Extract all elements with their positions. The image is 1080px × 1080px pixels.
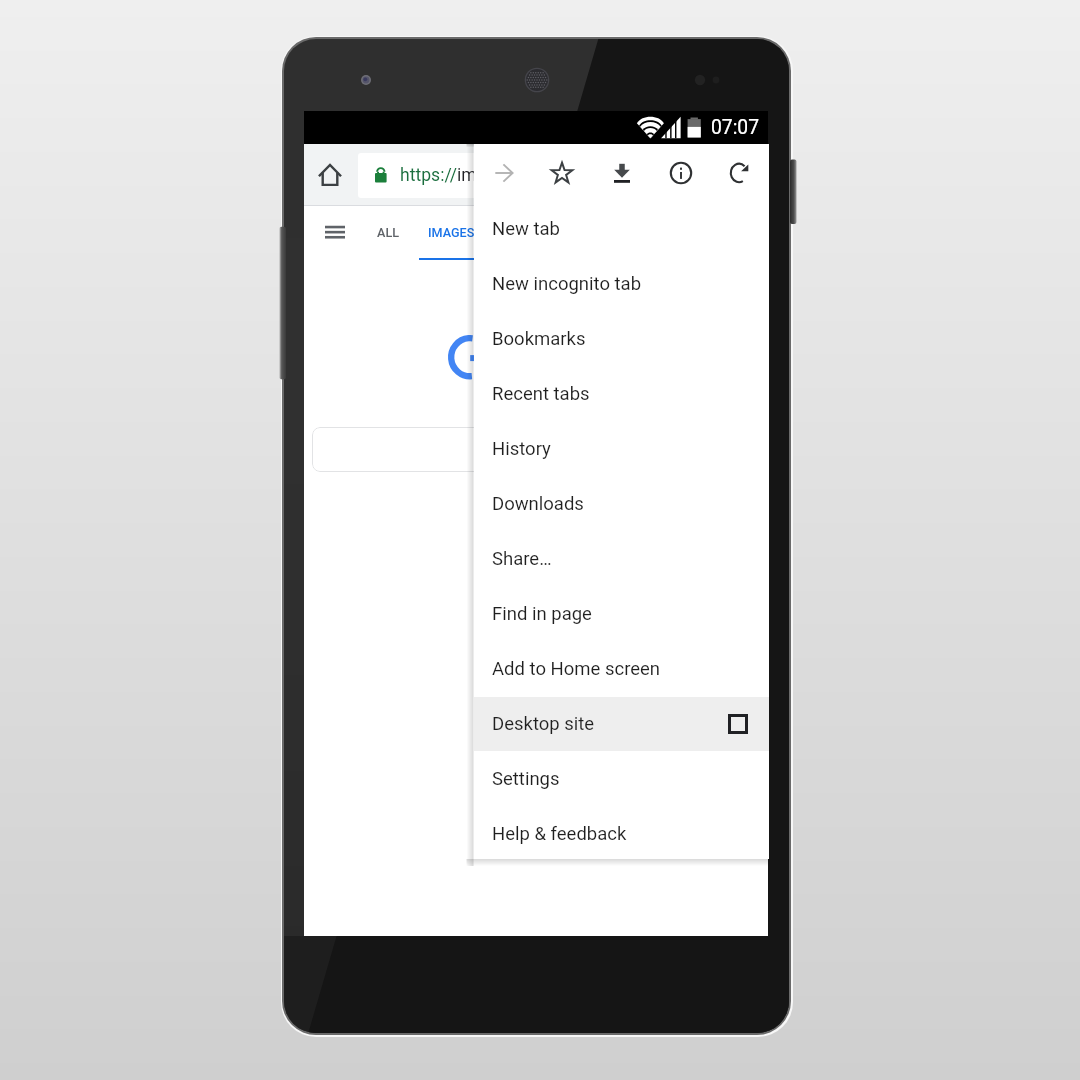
button[interactable]: New tab — [474, 202, 769, 256]
button[interactable]: Add to Home screen — [474, 642, 769, 696]
staticText: ALL — [377, 225, 400, 240]
staticText: Settings — [492, 768, 560, 790]
staticText: Desktop site — [492, 713, 595, 735]
button[interactable]: Downloads — [474, 477, 769, 531]
button[interactable]: Help & feedback — [474, 807, 769, 861]
staticText: New tab — [492, 218, 561, 240]
button[interactable]: Desktop site — [474, 697, 769, 751]
button[interactable]: History — [474, 422, 769, 476]
button[interactable]: Recent tabs — [474, 367, 769, 421]
button[interactable]: Find in page — [474, 587, 769, 641]
button[interactable]: Bookmarks — [474, 312, 769, 366]
staticText: New incognito tab — [492, 273, 642, 295]
button[interactable]: Bookmark — [541, 152, 583, 194]
button[interactable]: Site menu — [317, 214, 353, 250]
button[interactable]: IMAGES — [428, 214, 475, 250]
staticText: History — [492, 438, 551, 460]
button[interactable]: Forward — [483, 152, 525, 194]
staticText: Add to Home screen — [492, 658, 661, 680]
button[interactable]: Share… — [474, 532, 769, 586]
staticText: 07:07 — [711, 116, 760, 139]
button[interactable]: https://im — [358, 153, 508, 198]
button[interactable]: Settings — [474, 752, 769, 806]
staticText: Bookmarks — [492, 328, 586, 350]
staticText: Share… — [492, 548, 552, 570]
staticText: IMAGES — [428, 225, 475, 240]
staticText: Recent tabs — [492, 383, 590, 405]
button[interactable]: Reload — [718, 152, 760, 194]
staticText: Find in page — [492, 603, 592, 625]
button[interactable]: ALL — [377, 214, 400, 250]
button[interactable]: Download page — [601, 152, 643, 194]
button[interactable]: New incognito tab — [474, 257, 769, 311]
button[interactable]: Page info — [660, 152, 702, 194]
staticText: Help & feedback — [492, 823, 627, 845]
staticText: https://im — [400, 165, 477, 186]
button[interactable] — [312, 427, 512, 472]
button[interactable]: Home — [312, 157, 348, 193]
staticText: Downloads — [492, 493, 584, 515]
